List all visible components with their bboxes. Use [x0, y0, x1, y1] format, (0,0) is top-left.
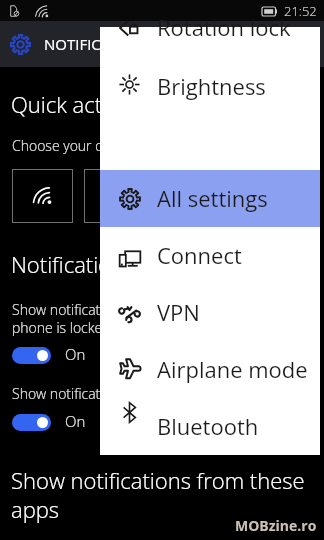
button[interactable]: Brightness: [100, 56, 320, 113]
staticText: Show notifications from these apps: [11, 465, 305, 524]
button[interactable]: Wi-Fi quick action: [12, 169, 73, 223]
staticText: Brightness: [157, 71, 266, 101]
button[interactable]: NOTIFICATIONS: [0, 21, 324, 67]
staticText: Notifications: [11, 249, 135, 279]
staticText: On: [65, 344, 86, 364]
button[interactable]: All settings: [100, 170, 320, 227]
button[interactable]: Airplane mode: [100, 341, 320, 398]
button[interactable]: Wi-Fi quick action: [84, 169, 145, 223]
staticText: Show notifications in action center when…: [12, 300, 289, 337]
button[interactable]: VPN: [100, 284, 320, 341]
staticText: Bluetooth: [157, 411, 259, 440]
staticText: All settings: [157, 183, 268, 213]
button[interactable]: Connect: [100, 227, 320, 284]
staticText: MOBzine.ro: [235, 516, 317, 535]
staticText: VPN: [157, 297, 200, 327]
staticText: Airplane mode: [157, 354, 308, 384]
staticText: Connect: [157, 240, 242, 270]
staticText: Rotation lock: [157, 12, 291, 42]
staticText: Show notifications in action center: [12, 384, 228, 403]
staticText: On: [65, 411, 86, 431]
button[interactable]: On: [12, 412, 86, 432]
button[interactable]: Bluetooth: [100, 398, 320, 427]
button[interactable]: On: [12, 345, 86, 365]
button[interactable]: Rotation lock: [100, 0, 320, 56]
staticText: 21:52: [284, 2, 317, 20]
staticText: Choose your quick actions: [12, 136, 177, 155]
staticText: NOTIFICATIONS: [44, 34, 154, 54]
staticText: Quick actions: [11, 89, 144, 119]
